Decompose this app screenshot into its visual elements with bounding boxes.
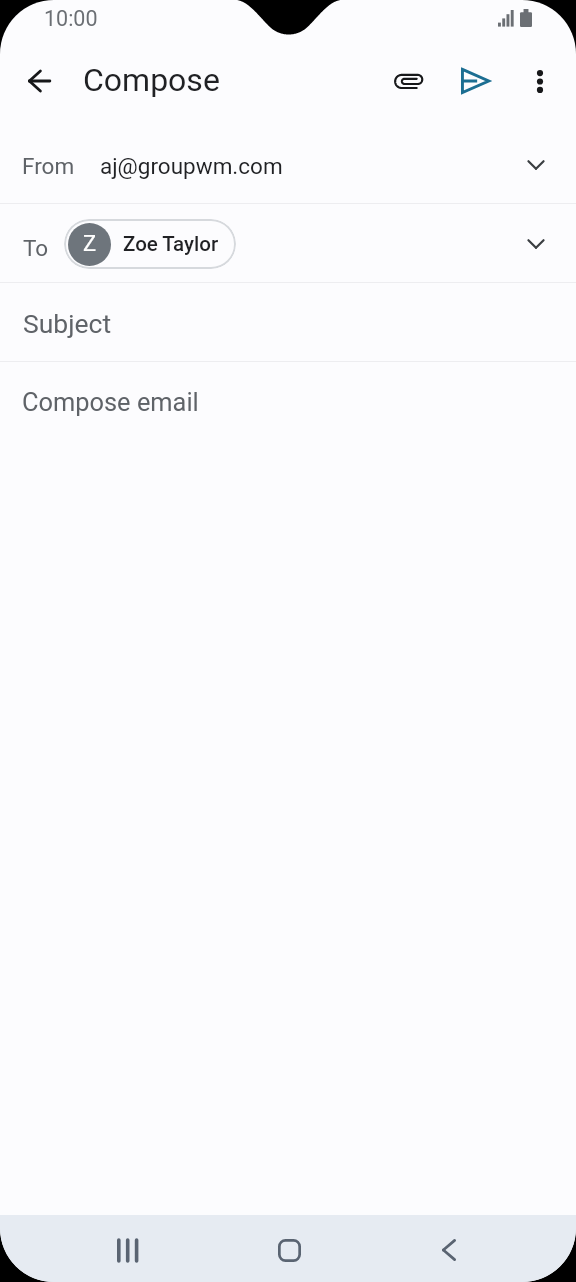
button[interactable]: From [0, 125, 576, 204]
button[interactable]: Recent apps [96, 1218, 160, 1282]
staticText: Z [83, 231, 97, 257]
button[interactable]: Z [64, 219, 236, 269]
button[interactable]: Back [417, 1218, 481, 1282]
button[interactable]: Navigate up [13, 55, 65, 107]
staticText: Subject [23, 308, 112, 339]
button[interactable]: Attach file [382, 55, 434, 107]
button[interactable]: Compose email [0, 362, 576, 438]
button[interactable]: To [0, 204, 576, 283]
staticText: To [23, 235, 49, 261]
button[interactable]: Home [257, 1218, 321, 1282]
button[interactable]: Subject [0, 283, 576, 362]
staticText: aj@groupwm.com [100, 153, 283, 179]
button[interactable]: Show sender options [512, 141, 560, 189]
button[interactable]: More options [514, 55, 566, 107]
button[interactable]: Send [449, 55, 501, 107]
staticText: Compose [83, 61, 220, 99]
staticText: Compose email [22, 387, 199, 417]
button[interactable]: Show Cc and Bcc [512, 220, 560, 268]
staticText: Zoe Taylor [123, 232, 219, 256]
staticText: 10:00 [44, 6, 98, 31]
staticText: From [22, 153, 75, 179]
